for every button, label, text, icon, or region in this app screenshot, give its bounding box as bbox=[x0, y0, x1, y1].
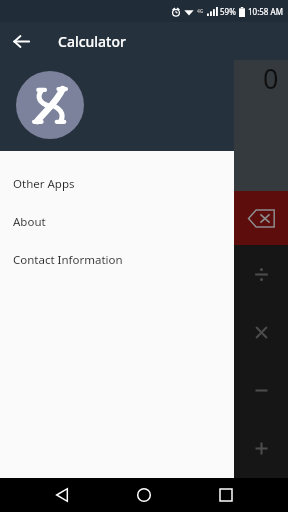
staticText: 59% bbox=[220, 6, 236, 17]
staticText: 0 bbox=[263, 60, 279, 97]
button[interactable]: minus bbox=[234, 361, 288, 419]
button[interactable]: Back bbox=[5, 25, 37, 57]
button[interactable]: times bbox=[234, 303, 288, 361]
button[interactable]: Other Apps bbox=[0, 165, 234, 203]
staticText: Contact Information bbox=[13, 252, 123, 268]
button[interactable]: Recent apps bbox=[206, 478, 246, 512]
staticText: 10:58 AM bbox=[248, 6, 283, 17]
staticText: Other Apps bbox=[13, 176, 75, 192]
button[interactable]: plus bbox=[234, 419, 288, 477]
button[interactable]: Home bbox=[124, 478, 164, 512]
staticText: About bbox=[13, 214, 46, 230]
staticText: Calculator bbox=[58, 32, 126, 51]
button[interactable]: About bbox=[0, 203, 234, 241]
button[interactable]: Contact Information bbox=[0, 241, 234, 279]
button[interactable]: Back bbox=[42, 478, 82, 512]
button[interactable]: Backspace bbox=[234, 191, 288, 245]
button[interactable]: divide bbox=[234, 245, 288, 303]
staticText: 4G bbox=[197, 8, 204, 15]
